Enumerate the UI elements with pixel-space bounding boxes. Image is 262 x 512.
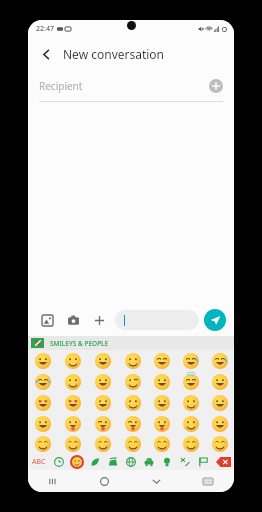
button[interactable] bbox=[115, 310, 199, 330]
button[interactable]: Emoji bbox=[88, 413, 118, 434]
button[interactable]: Emoji bbox=[28, 413, 58, 434]
button[interactable]: Emoji bbox=[176, 350, 205, 371]
button[interactable]: Keyboard layout bbox=[182, 470, 234, 492]
button[interactable]: Emoji bbox=[88, 371, 118, 392]
button[interactable]: Emoji bbox=[176, 434, 205, 453]
button[interactable]: Flags bbox=[194, 453, 212, 470]
staticText: SMILEYS & PEOPLE bbox=[50, 339, 109, 348]
staticText: Recipient bbox=[39, 79, 206, 93]
button[interactable]: Emoji bbox=[28, 371, 58, 392]
button[interactable]: Emoji bbox=[147, 434, 176, 453]
button[interactable]: Emoji bbox=[118, 434, 147, 453]
button[interactable]: Hide keyboard bbox=[130, 470, 182, 492]
button[interactable]: Emoji bbox=[205, 434, 234, 453]
button[interactable]: Emoji bbox=[176, 392, 205, 413]
button[interactable]: Emoji bbox=[58, 434, 88, 453]
button[interactable]: Emoji bbox=[28, 350, 58, 371]
button[interactable]: Back bbox=[33, 41, 59, 67]
button[interactable]: Emoji bbox=[147, 371, 176, 392]
button[interactable]: Emoji bbox=[118, 371, 147, 392]
button[interactable]: Emoji bbox=[88, 434, 118, 453]
button[interactable]: Home bbox=[79, 470, 130, 492]
button[interactable]: Emoji bbox=[88, 350, 118, 371]
button[interactable]: Backspace bbox=[212, 453, 234, 470]
button[interactable]: Emoji bbox=[147, 392, 176, 413]
button[interactable]: Emoji bbox=[58, 371, 88, 392]
button[interactable]: Emoji bbox=[147, 350, 176, 371]
button[interactable]: Emoji bbox=[58, 350, 88, 371]
button[interactable]: Add recipient bbox=[206, 76, 226, 96]
button[interactable]: Animals bbox=[86, 453, 104, 470]
button[interactable]: Recents bbox=[28, 470, 79, 492]
button[interactable]: Emoji bbox=[118, 413, 147, 434]
button[interactable]: Travel bbox=[140, 453, 158, 470]
button[interactable]: Food bbox=[104, 453, 122, 470]
button[interactable]: ABC bbox=[28, 453, 50, 470]
button[interactable]: Smileys bbox=[68, 453, 86, 470]
button[interactable]: Emoji bbox=[58, 392, 88, 413]
button[interactable]: Objects bbox=[158, 453, 176, 470]
button[interactable]: Emoji bbox=[205, 350, 234, 371]
button[interactable]: Emoji bbox=[205, 413, 234, 434]
button[interactable]: Symbols bbox=[176, 453, 194, 470]
button[interactable]: Send bbox=[204, 309, 226, 331]
button[interactable]: More options bbox=[88, 309, 110, 331]
button[interactable]: Emoji bbox=[88, 392, 118, 413]
button[interactable]: Emoji bbox=[147, 413, 176, 434]
button[interactable]: Emoji bbox=[205, 392, 234, 413]
button[interactable]: Activity bbox=[122, 453, 140, 470]
staticText: ABC bbox=[32, 457, 46, 467]
button[interactable]: Emoji bbox=[28, 434, 58, 453]
button[interactable]: Emoji bbox=[118, 392, 147, 413]
button[interactable]: Emoji bbox=[118, 350, 147, 371]
button[interactable]: Emoji bbox=[28, 392, 58, 413]
button[interactable]: Emoji bbox=[176, 371, 205, 392]
button[interactable]: Emoji bbox=[58, 413, 88, 434]
button[interactable]: Gallery bbox=[36, 309, 58, 331]
button[interactable]: Camera bbox=[62, 309, 84, 331]
button[interactable]: Emoji bbox=[176, 413, 205, 434]
button[interactable]: Recent bbox=[50, 453, 68, 470]
staticText: New conversation bbox=[63, 46, 165, 62]
button[interactable]: Emoji bbox=[205, 371, 234, 392]
staticText: 22:47 bbox=[36, 24, 54, 34]
